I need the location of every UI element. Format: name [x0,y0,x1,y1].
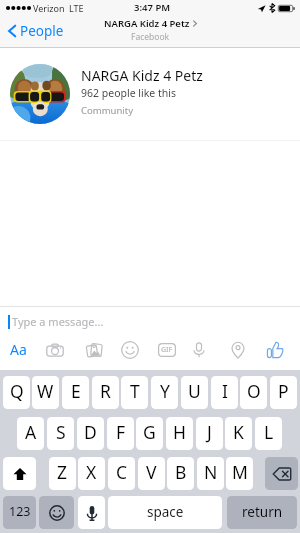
staticText: R [100,379,111,403]
staticText: Q [10,379,24,403]
button[interactable]: V [138,457,165,490]
staticText: Type a message... [12,314,104,329]
staticText: S [56,420,66,444]
button[interactable]: I [211,376,238,409]
button[interactable]: Shift [3,457,36,490]
button[interactable]: Camera [42,337,68,363]
button[interactable]: T [121,376,148,409]
button[interactable]: return [227,496,297,529]
staticText: NARGA Kidz 4 Petz [81,66,203,85]
button[interactable]: H [166,417,193,450]
button[interactable]: GIF [154,337,180,363]
button[interactable]: R [92,376,119,409]
button[interactable]: X [78,457,105,490]
staticText: V [146,460,157,484]
button[interactable]: U [181,376,208,409]
button[interactable]: F [107,417,134,450]
staticText: O [247,379,261,403]
button[interactable]: Stickers [117,337,143,363]
button[interactable]: E [62,376,89,409]
button[interactable]: J [196,417,223,450]
button[interactable]: Text formatting [6,337,31,362]
button[interactable]: L [255,417,282,450]
button[interactable]: K [225,417,252,450]
button[interactable]: Photos [82,337,108,363]
staticText: X [86,460,97,484]
staticText: NARGA Kidz 4 Petz [104,17,190,30]
staticText: T [130,379,140,403]
button[interactable]: M [226,457,253,490]
staticText: People [20,22,64,40]
button[interactable]: N [197,457,224,490]
button[interactable]: G [136,417,163,450]
staticText: Facebook [131,31,170,43]
button[interactable]: Y [151,376,178,409]
button[interactable]: O [240,376,267,409]
staticText: G [143,420,156,444]
button[interactable]: Like [262,337,288,363]
staticText: P [278,379,289,403]
button[interactable]: P [270,376,297,409]
staticText: LTE [69,2,84,14]
staticText: K [233,420,244,444]
staticText: space [147,503,184,521]
staticText: N [204,460,218,484]
staticText: D [84,420,97,444]
staticText: J [207,420,212,444]
staticText: H [173,420,186,444]
button[interactable]: Emoji [39,496,74,529]
staticText: Verizon [33,2,65,14]
button[interactable]: Q [3,376,30,409]
button[interactable]: Voice message [186,337,212,363]
staticText: GIF [161,345,173,355]
button[interactable]: Location [225,337,251,363]
staticText: Community [81,104,133,117]
button[interactable]: Dictation [78,496,105,529]
button[interactable]: D [77,417,104,450]
button[interactable]: space [108,496,222,529]
staticText: W [37,379,54,403]
staticText: Z [57,460,68,484]
staticText: 123 [9,503,31,520]
staticText: F [116,420,126,444]
button[interactable]: NARGA Kidz 4 Petz [104,17,197,43]
staticText: M [232,460,248,484]
staticText: Y [160,379,170,403]
staticText: L [264,420,274,444]
button[interactable]: Z [49,457,76,490]
button[interactable]: People [0,18,70,44]
button[interactable]: A [17,417,44,450]
staticText: A [25,420,37,444]
staticText: E [71,379,81,403]
staticText: Aa [10,340,27,359]
button[interactable]: Delete [265,457,298,490]
staticText: 962 people like this [81,86,176,100]
button[interactable]: C [108,457,135,490]
staticText: U [188,379,201,403]
staticText: 3:47 PM [134,1,171,14]
staticText: I [222,379,228,403]
button[interactable]: B [167,457,194,490]
button[interactable]: 123 [3,496,36,529]
staticText: return [242,503,283,521]
staticText: B [175,460,187,484]
button[interactable]: W [32,376,59,409]
staticText: C [116,460,128,484]
button[interactable]: S [47,417,74,450]
